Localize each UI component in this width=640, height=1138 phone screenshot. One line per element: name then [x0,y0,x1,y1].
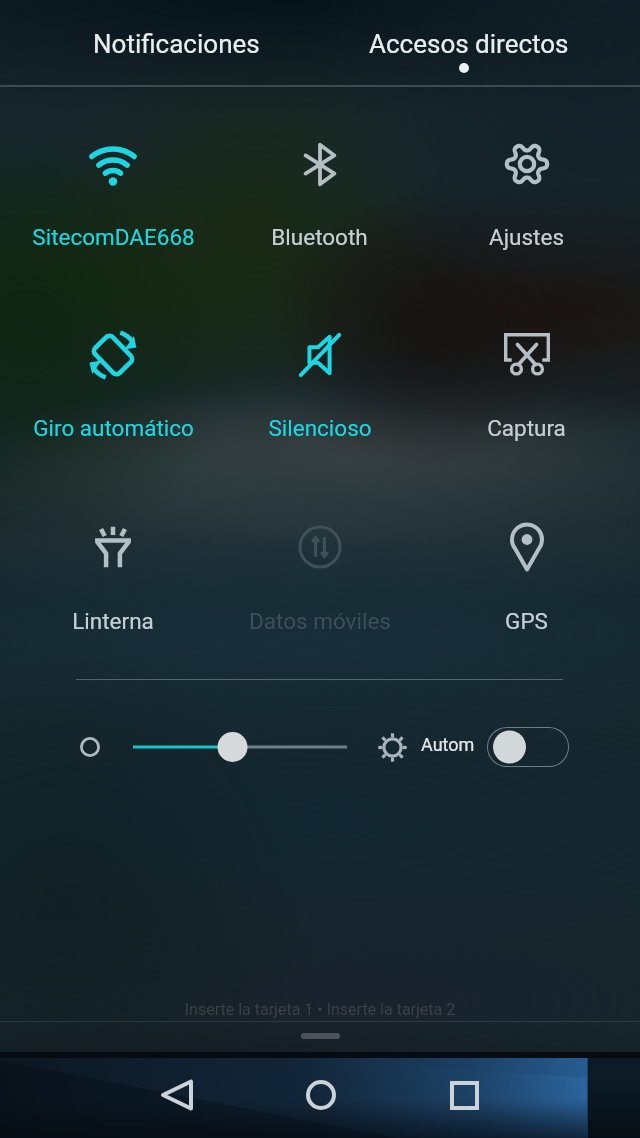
button[interactable]: Brillo [118,722,362,772]
button[interactable]: Recientes [428,1059,500,1131]
button[interactable]: Bluetooth [216,136,423,192]
button[interactable]: Silencioso [216,327,423,383]
staticText: Giro automático [33,415,194,441]
staticText: Linterna [72,608,154,634]
button[interactable]: Linterna [10,519,216,575]
staticText: Accesos directos [369,29,569,59]
button[interactable]: Inicio [285,1059,357,1131]
button[interactable]: Ajustes [423,136,630,192]
button[interactable]: SitecomDAE668 [10,136,216,192]
button[interactable]: GPS [423,519,630,575]
button[interactable]: Giro automático [10,327,216,383]
button[interactable]: Datos móviles [216,519,423,575]
button[interactable]: Captura [423,327,630,383]
staticText: Datos móviles [249,608,391,634]
staticText: Captura [487,415,566,441]
button[interactable]: Cerrar panel [301,1033,340,1039]
staticText: Ajustes [489,224,564,250]
staticText: GPS [505,608,548,634]
staticText: Inserte la tarjeta 1 • Inserte la tarjet… [0,1000,640,1019]
staticText: Notificaciones [93,29,260,59]
staticText: Silencioso [268,415,372,441]
button[interactable]: Brillo automático [487,727,569,767]
button[interactable]: Notificaciones [24,2,328,87]
button[interactable]: Brillo mínimo [80,737,100,757]
staticText: Bluetooth [271,224,368,250]
staticText: SitecomDAE668 [32,224,195,250]
button[interactable]: Accesos directos [317,2,621,87]
staticText: Autom [421,734,475,755]
button[interactable]: Atrás [140,1059,212,1131]
